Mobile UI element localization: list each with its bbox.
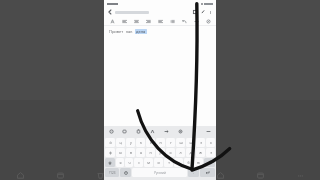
staticText: ш xyxy=(179,140,183,145)
button[interactable]: ь xyxy=(174,158,183,167)
button[interactable]: н xyxy=(156,138,165,147)
button[interactable]: и xyxy=(154,158,163,167)
staticText: ь xyxy=(178,160,180,165)
staticText: м xyxy=(147,160,150,165)
staticText: л xyxy=(179,150,182,155)
button[interactable]: й xyxy=(105,138,115,147)
button[interactable]: з xyxy=(196,138,205,147)
staticText: как xyxy=(126,29,133,34)
button[interactable]: Keyboard tool 1 xyxy=(118,126,131,137)
staticText: ?123 xyxy=(109,171,116,175)
button[interactable]: Keyboard tool 7 xyxy=(201,126,215,137)
button[interactable]: Keyboard tool 4 xyxy=(159,126,173,137)
staticText: с xyxy=(138,160,140,165)
button[interactable]: Delete xyxy=(80,162,120,180)
button[interactable]: Period xyxy=(188,168,199,177)
staticText: е xyxy=(150,140,152,145)
button[interactable]: ш xyxy=(176,138,185,147)
staticText: Русский xyxy=(154,171,166,175)
button[interactable]: с xyxy=(134,158,143,167)
button[interactable]: Format 2 xyxy=(130,17,142,26)
staticText: у xyxy=(130,140,132,145)
button[interactable]: х xyxy=(206,138,215,147)
button[interactable]: Format 0 xyxy=(106,17,118,26)
staticText: д xyxy=(189,150,192,155)
button[interactable]: Format 8 xyxy=(202,17,214,26)
button[interactable]: т xyxy=(164,158,173,167)
staticText: ы xyxy=(119,150,122,155)
staticText: . xyxy=(193,170,195,175)
staticText: р xyxy=(159,150,162,155)
button[interactable]: Keyboard tool 3 xyxy=(145,126,159,137)
staticText: н xyxy=(159,140,162,145)
button[interactable]: о xyxy=(166,148,175,157)
staticText: б xyxy=(187,160,190,165)
staticText: х xyxy=(210,140,212,145)
staticText: ч xyxy=(128,160,131,165)
button[interactable]: ч xyxy=(125,158,133,167)
button[interactable]: Emoji xyxy=(120,168,131,177)
button[interactable]: Format 6 xyxy=(178,17,190,26)
button[interactable]: More options xyxy=(207,9,214,16)
staticText: ж xyxy=(199,150,202,155)
staticText: т xyxy=(168,160,170,165)
button[interactable]: Undo xyxy=(191,8,199,16)
staticText: з xyxy=(200,140,202,145)
button[interactable]: Backspace xyxy=(204,158,215,167)
staticText: в xyxy=(130,150,132,155)
button[interactable]: р xyxy=(156,148,165,157)
staticText: э xyxy=(210,150,212,155)
button[interactable]: ц xyxy=(116,138,125,147)
staticText: щ xyxy=(189,140,193,145)
button[interactable]: к xyxy=(136,138,145,147)
button[interactable]: Enter xyxy=(200,168,215,177)
staticText: ю xyxy=(197,160,200,165)
staticText: ц xyxy=(119,140,122,145)
button[interactable]: Keyboard tool 0 xyxy=(105,126,118,137)
button[interactable]: в xyxy=(126,148,135,157)
staticText: ф xyxy=(109,150,112,155)
button[interactable]: Keyboard tool 5 xyxy=(173,126,187,137)
button[interactable]: щ xyxy=(186,138,195,147)
button[interactable]: Back xyxy=(106,8,114,16)
button[interactable]: м xyxy=(144,158,153,167)
button[interactable]: д xyxy=(186,148,195,157)
button[interactable]: Shift xyxy=(105,158,115,167)
button[interactable]: Keyboard tool 6 xyxy=(187,126,201,137)
button[interactable]: а xyxy=(136,148,145,157)
button[interactable]: п xyxy=(146,148,155,157)
button[interactable]: Format 7 xyxy=(190,17,202,26)
staticText: Привет xyxy=(109,29,124,34)
button[interactable]: Attach xyxy=(199,8,207,16)
button[interactable]: Space xyxy=(132,168,187,177)
button[interactable]: ж xyxy=(196,148,205,157)
staticText: и xyxy=(157,160,160,165)
button[interactable]: е xyxy=(146,138,155,147)
button[interactable]: Format 3 xyxy=(142,17,154,26)
button[interactable]: г xyxy=(166,138,175,147)
button[interactable]: ф xyxy=(105,148,115,157)
button[interactable]: Format 1 xyxy=(118,17,130,26)
button[interactable]: ы xyxy=(116,148,125,157)
button[interactable]: Home xyxy=(200,162,240,180)
button[interactable]: л xyxy=(176,148,185,157)
button[interactable]: ю xyxy=(194,158,203,167)
staticText: а xyxy=(140,150,142,155)
button[interactable]: б xyxy=(184,158,193,167)
button[interactable]: Numbers xyxy=(105,168,119,177)
button[interactable]: э xyxy=(206,148,215,157)
button[interactable]: у xyxy=(126,138,135,147)
staticText: я xyxy=(119,160,122,165)
button[interactable]: Format 5 xyxy=(166,17,178,26)
staticText: к xyxy=(140,140,142,145)
button[interactable]: Keyboard tool 2 xyxy=(131,126,145,137)
staticText: о xyxy=(169,150,172,155)
staticText: дела xyxy=(136,29,146,34)
staticText: й xyxy=(109,140,112,145)
button[interactable]: я xyxy=(116,158,124,167)
button[interactable]: Format 4 xyxy=(154,17,166,26)
